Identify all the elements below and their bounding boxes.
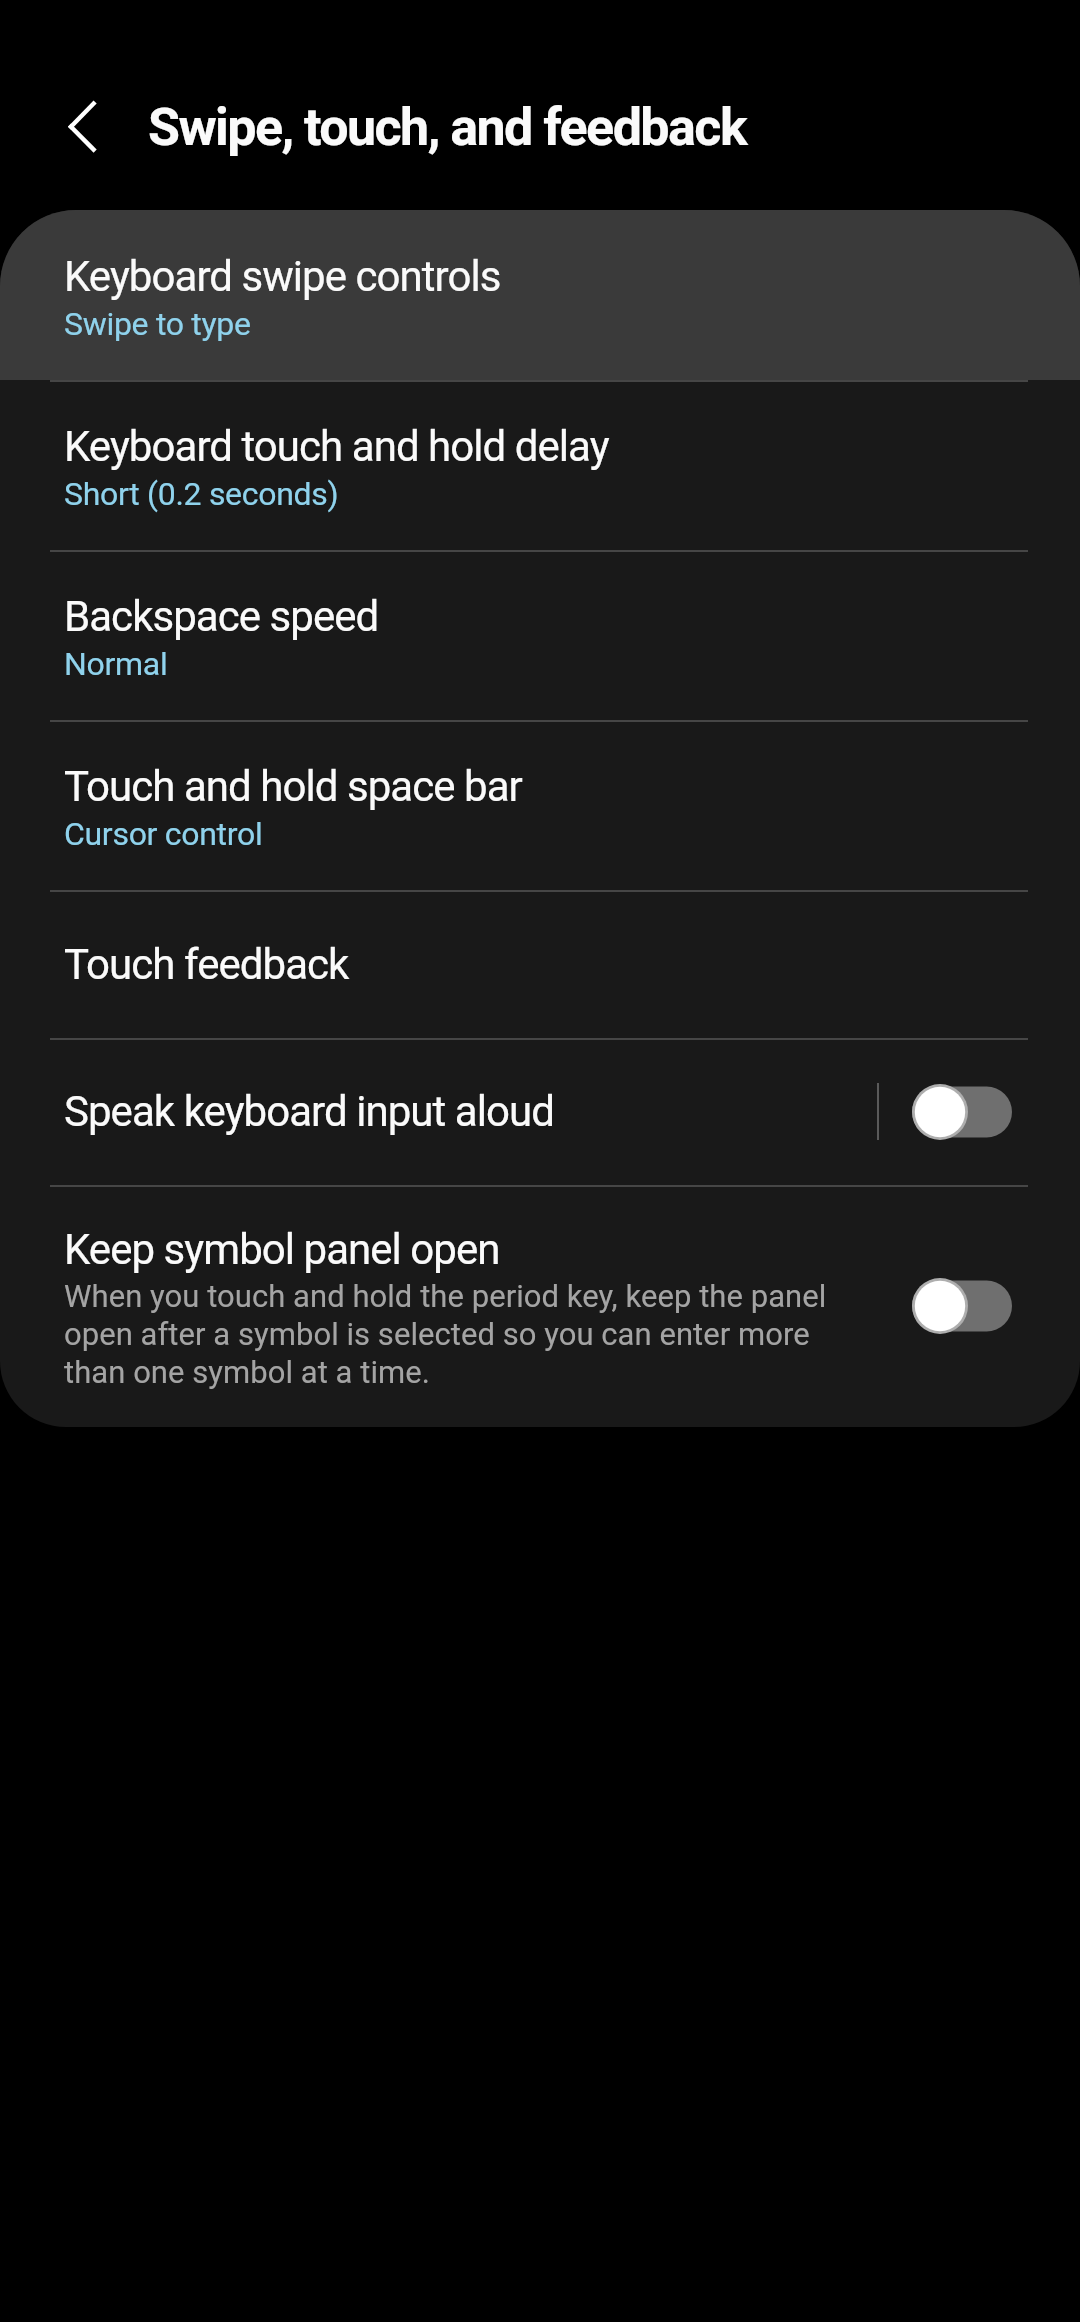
button[interactable]: Touch and hold space bar: [0, 720, 1080, 890]
staticText: Normal: [64, 642, 168, 684]
button[interactable]: Toggle switch, off: [912, 1276, 1012, 1336]
staticText: Keyboard swipe controls: [64, 250, 501, 302]
staticText: Short (0.2 seconds): [64, 472, 339, 514]
button[interactable]: Keyboard touch and hold delay: [0, 380, 1080, 550]
button[interactable]: Keep symbol panel open: [0, 1185, 1080, 1427]
button[interactable]: Speak keyboard input aloud: [0, 1038, 1080, 1185]
button[interactable]: Navigate up: [16, 58, 128, 170]
staticText: Touch and hold space bar: [64, 760, 522, 812]
staticText: Speak keyboard input aloud: [64, 1087, 877, 1136]
button[interactable]: Backspace speed: [0, 550, 1080, 720]
staticText: Keep symbol panel open: [64, 1223, 500, 1275]
staticText: When you touch and hold the period key, …: [64, 1277, 863, 1391]
staticText: Touch feedback: [64, 940, 349, 989]
staticText: Cursor control: [64, 812, 263, 854]
button[interactable]: Keyboard swipe controls: [0, 210, 1080, 380]
staticText: Keyboard touch and hold delay: [64, 420, 609, 472]
staticText: Backspace speed: [64, 590, 379, 642]
button[interactable]: Toggle switch, off: [912, 1082, 1012, 1142]
button[interactable]: Touch feedback: [0, 890, 1080, 1038]
staticText: Swipe to type: [64, 302, 251, 344]
staticText: Swipe, touch, and feedback: [148, 97, 747, 158]
